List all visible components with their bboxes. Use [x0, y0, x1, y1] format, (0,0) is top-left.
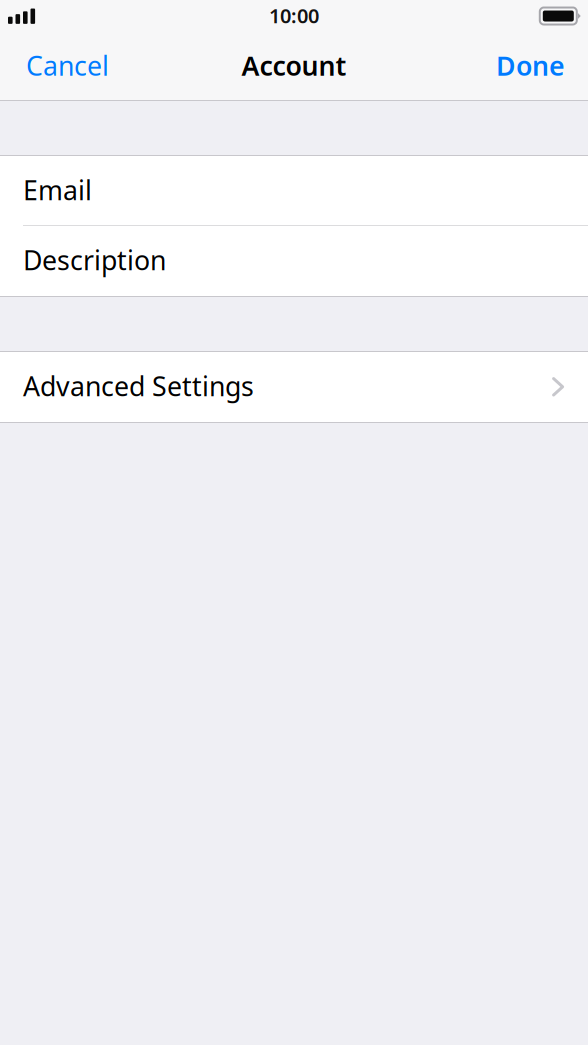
button[interactable]: Description: [0, 226, 588, 296]
staticText: Done: [496, 48, 565, 83]
staticText: Description: [23, 242, 166, 278]
button[interactable]: Done: [482, 31, 588, 100]
button[interactable]: Advanced Settings: [0, 352, 588, 422]
staticText: Advanced Settings: [23, 368, 254, 404]
staticText: Account: [241, 48, 346, 83]
button[interactable]: Email: [0, 156, 588, 226]
staticText: Email: [23, 172, 92, 208]
button[interactable]: Cancel: [0, 31, 123, 100]
staticText: 10:00: [269, 2, 319, 29]
staticText: Cancel: [26, 48, 109, 83]
